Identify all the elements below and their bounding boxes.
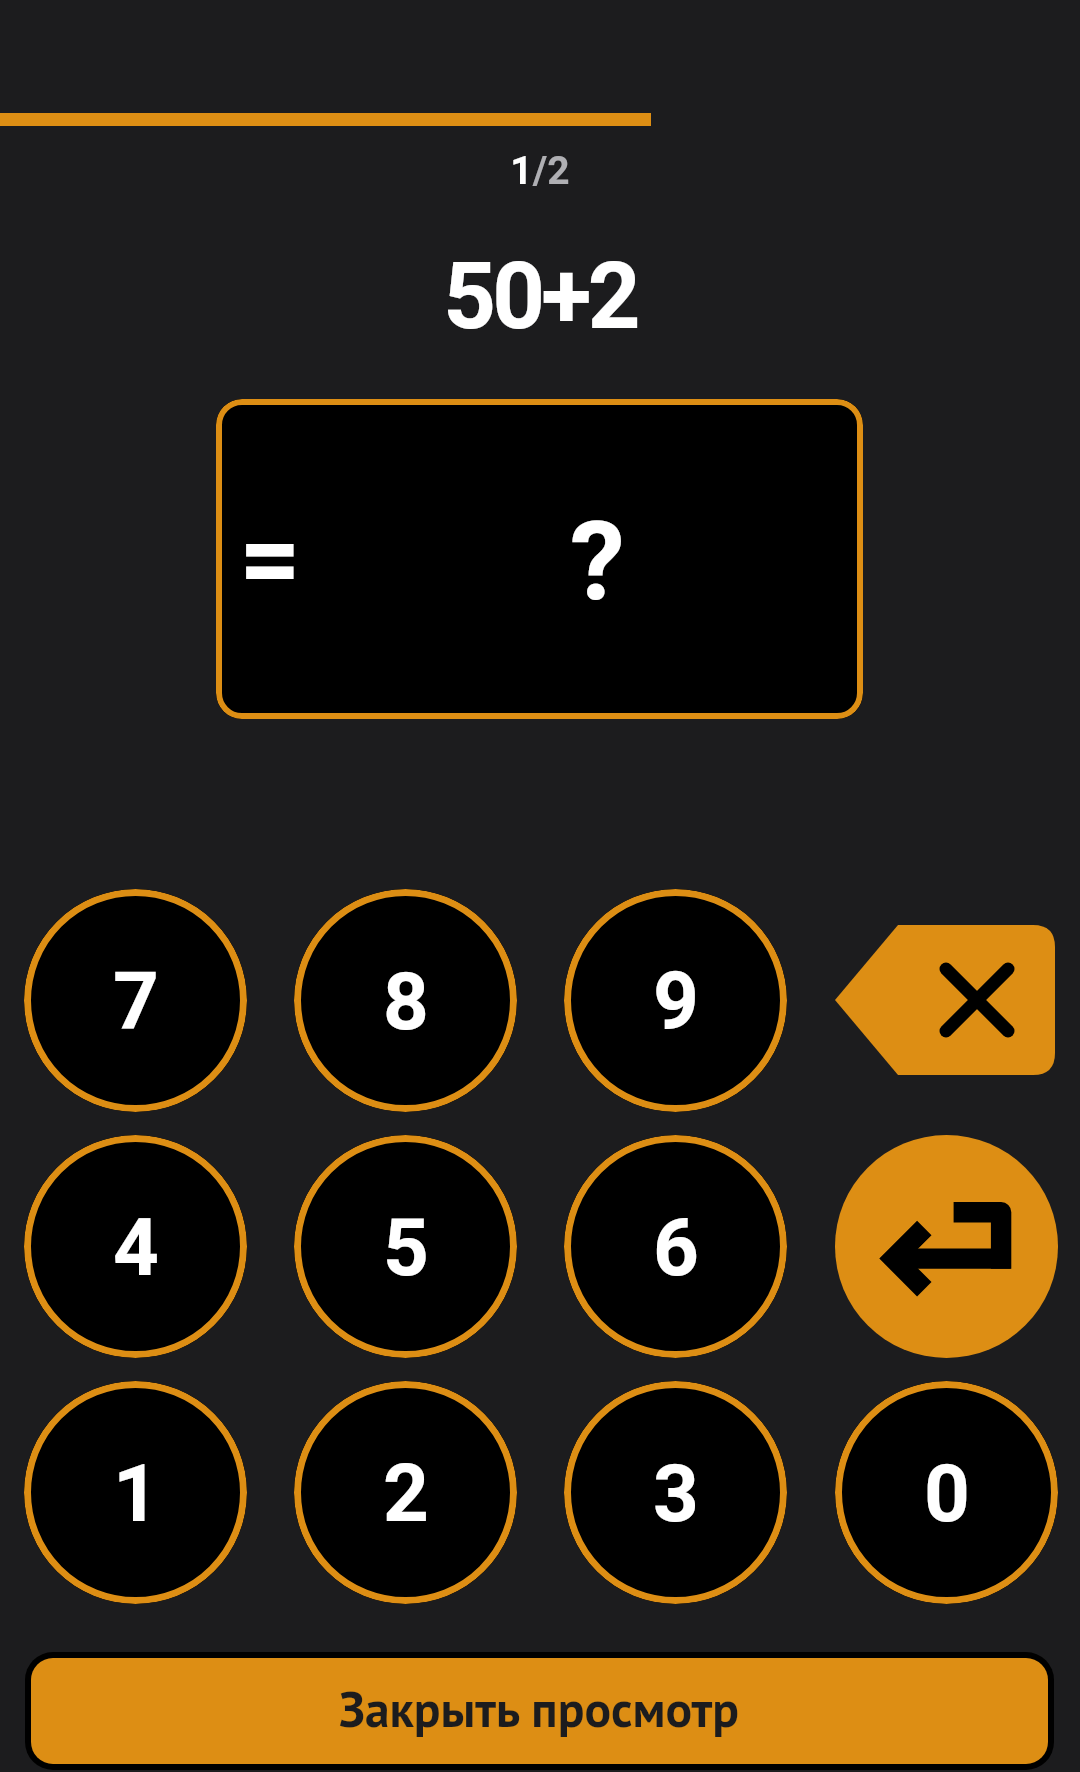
staticText: 1/2	[0, 148, 1080, 194]
button[interactable]: 3	[564, 1381, 787, 1604]
staticText: 7	[113, 955, 159, 1049]
staticText: 50+2	[0, 243, 1080, 351]
staticText: 1	[113, 1447, 159, 1541]
staticText: 6	[653, 1201, 699, 1295]
staticText: 9	[653, 955, 699, 1049]
staticText: 0	[924, 1447, 970, 1541]
staticText: 2	[383, 1447, 429, 1541]
staticText: ?	[570, 497, 625, 626]
staticText: 4	[113, 1201, 159, 1295]
button[interactable]: =	[216, 399, 863, 719]
staticText: Закрыть просмотр	[339, 1677, 740, 1741]
button[interactable]: Enter	[835, 1135, 1058, 1358]
button[interactable]: 4	[24, 1135, 247, 1358]
button[interactable]: 9	[564, 889, 787, 1112]
button[interactable]: 6	[564, 1135, 787, 1358]
staticText: =	[239, 496, 301, 623]
button[interactable]: 7	[24, 889, 247, 1112]
button[interactable]: 0	[835, 1381, 1058, 1604]
button[interactable]: Backspace	[835, 925, 1055, 1075]
button[interactable]: 8	[294, 889, 517, 1112]
staticText: 3	[653, 1447, 699, 1541]
staticText: 8	[383, 955, 429, 1049]
button[interactable]: 2	[294, 1381, 517, 1604]
button[interactable]: 1	[24, 1381, 247, 1604]
staticText: 5	[383, 1201, 429, 1295]
button[interactable]: 5	[294, 1135, 517, 1358]
button[interactable]: Закрыть просмотр	[25, 1652, 1054, 1770]
